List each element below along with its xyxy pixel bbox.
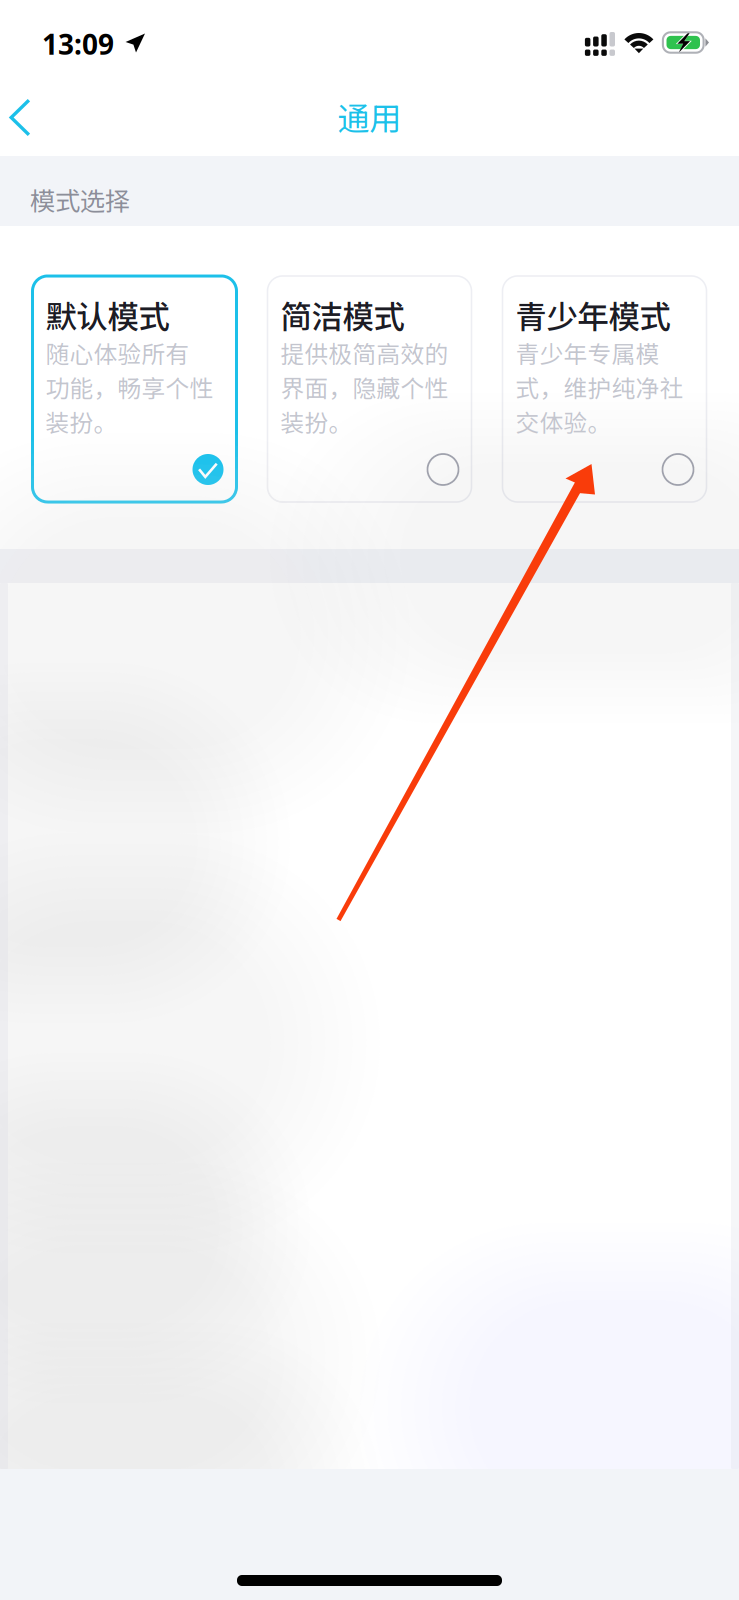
staticText: 13:09 bbox=[42, 25, 114, 63]
staticText: 模式选择 bbox=[30, 181, 130, 218]
staticText: 简洁模式 bbox=[280, 292, 404, 337]
staticText: 默认模式 bbox=[45, 292, 169, 337]
staticText: 交体验。 bbox=[515, 404, 611, 438]
staticText: 界面，隐藏个性 bbox=[280, 370, 448, 404]
staticText: 装扮。 bbox=[45, 404, 117, 438]
button[interactable]: 返回 bbox=[0, 87, 62, 151]
staticText: 功能，畅享个性 bbox=[45, 370, 213, 404]
button[interactable]: 默认模式 bbox=[32, 276, 236, 502]
staticText: 装扮。 bbox=[280, 404, 352, 438]
button[interactable]: 青少年模式 bbox=[502, 276, 706, 502]
button[interactable]: 简洁模式 bbox=[267, 276, 471, 502]
staticText: 提供极简高效的 bbox=[280, 335, 448, 370]
staticText: 式，维护纯净社 bbox=[515, 370, 683, 404]
staticText: 青少年专属模 bbox=[515, 335, 659, 370]
staticText: 通用 bbox=[337, 93, 401, 140]
staticText: 随心体验所有 bbox=[45, 335, 189, 370]
staticText: 青少年模式 bbox=[515, 292, 670, 337]
